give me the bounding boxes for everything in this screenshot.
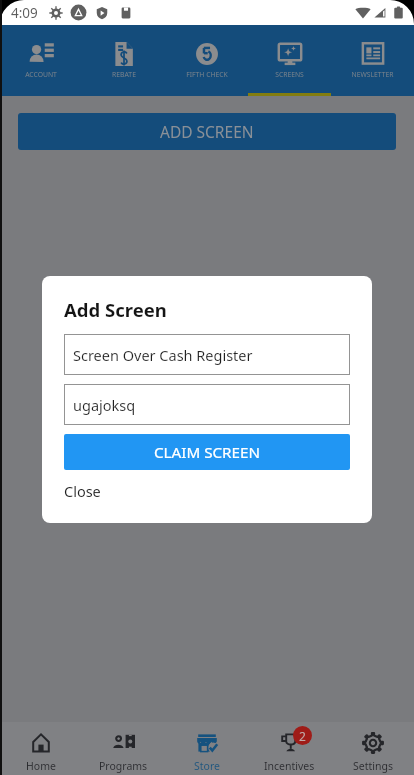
staticText: REBATE	[112, 70, 136, 79]
staticText: ugajoksq	[73, 395, 136, 415]
staticText: Incentives	[264, 759, 315, 773]
staticText: ACCOUNT	[25, 70, 57, 79]
staticText: Add Screen	[64, 297, 167, 322]
staticText: Programs	[99, 759, 148, 773]
staticText: Store	[194, 759, 220, 773]
button[interactable]: Close	[64, 481, 101, 501]
staticText: SCREENS	[275, 70, 304, 79]
button[interactable]: Store	[165, 722, 248, 775]
button[interactable]: NEWSLETTER	[331, 25, 414, 96]
staticText: FIFTH CHECK	[186, 70, 228, 79]
staticText: Settings	[353, 759, 393, 773]
button[interactable]: Programs	[82, 722, 165, 775]
button[interactable]: FIFTH CHECK	[165, 25, 248, 96]
button[interactable]: ADD SCREEN	[18, 113, 396, 150]
button[interactable]: Home	[0, 722, 82, 775]
button[interactable]: SCREENS	[248, 25, 331, 96]
staticText: Screen Over Cash Register	[73, 345, 253, 365]
staticText: Home	[26, 759, 56, 773]
staticText: 2	[299, 728, 306, 744]
staticText: 4:09	[11, 4, 38, 22]
staticText: CLAIM SCREEN	[154, 442, 260, 463]
button[interactable]: Settings	[331, 722, 414, 775]
staticText: ADD SCREEN	[160, 121, 254, 142]
button[interactable]: REBATE	[82, 25, 165, 96]
staticText: NEWSLETTER	[351, 70, 394, 79]
button[interactable]: 2	[248, 722, 331, 775]
button[interactable]: ACCOUNT	[0, 25, 82, 96]
button[interactable]: CLAIM SCREEN	[64, 434, 350, 470]
